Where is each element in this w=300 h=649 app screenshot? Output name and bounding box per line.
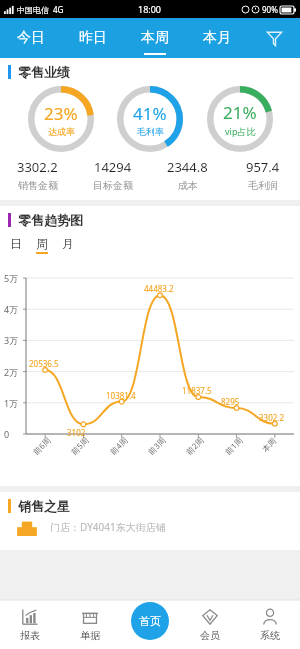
button[interactable]: 今日 [0,18,62,58]
staticText: 成本 [178,179,198,192]
staticText: 达成率 [48,126,75,137]
staticText: 2万 [4,366,19,378]
staticText: 21% [223,101,257,124]
staticText: 3102 [67,427,86,438]
staticText: 毛利润 [248,179,278,192]
staticText: 11837.5 [182,385,212,396]
staticText: 4万 [4,303,19,315]
staticText: 前3周 [145,434,168,457]
staticText: 44483.2 [144,283,174,294]
button[interactable]: 日 [10,236,22,254]
button[interactable]: 3302.2 [0,158,75,192]
button[interactable]: 本周 [124,18,186,58]
staticText: 23% [44,102,78,125]
staticText: 销售之星 [18,498,70,514]
button[interactable]: 14294 [75,158,150,192]
staticText: 14294 [94,158,132,176]
staticText: 前6周 [30,434,53,457]
staticText: 41% [133,102,167,125]
staticText: 前5周 [68,434,91,457]
staticText: 今日 [17,29,45,47]
button[interactable]: 23% [28,86,94,152]
button[interactable]: 周 [36,236,48,254]
staticText: 会员 [200,629,220,642]
staticText: 系统 [260,629,280,642]
button[interactable]: 系统 [240,600,300,649]
staticText: 10381.4 [106,390,136,401]
staticText: 3302.2 [259,412,285,423]
staticText: 报表 [20,629,40,642]
staticText: 4G [53,4,64,15]
staticText: 5万 [4,272,19,284]
staticText: 1万 [4,397,19,409]
staticText: 本月 [203,29,231,47]
button[interactable]: 首页 [120,600,180,649]
staticText: 零售业绩 [18,64,70,80]
staticText: 90% [262,4,278,15]
staticText: 首页 [139,614,161,628]
button[interactable]: 门店：DY4041东大街店铺 [14,520,300,550]
button[interactable]: 会员 [180,600,240,649]
staticText: 3万 [4,334,19,346]
staticText: 本周 [260,436,278,454]
staticText: 前1周 [222,434,245,457]
staticText: 8295 [221,396,240,407]
staticText: 周 [36,236,48,251]
staticText: 3302.2 [17,158,58,176]
button[interactable]: 报表 [0,600,60,649]
staticText: 前4周 [107,434,130,457]
staticText: 门店：DY4041东大街店铺 [50,520,166,534]
staticText: 昨日 [79,29,107,47]
staticText: 月 [62,236,74,251]
button[interactable]: 月 [62,236,74,254]
button[interactable]: 21% [207,86,273,152]
staticText: 20536.5 [29,358,59,369]
button[interactable]: 昨日 [62,18,124,58]
staticText: 中国电信 [17,5,49,15]
staticText: 本周 [141,29,169,47]
staticText: 毛利率 [137,126,164,137]
button[interactable]: 41% [117,86,183,152]
button[interactable]: Filter [248,18,300,58]
button[interactable]: 本月 [186,18,248,58]
staticText: 零售趋势图 [18,212,83,228]
staticText: vip占比 [225,125,256,137]
staticText: 前2周 [183,434,206,457]
staticText: 18:00 [138,3,162,15]
button[interactable]: 2344.8 [150,158,225,192]
staticText: 957.4 [246,158,280,176]
staticText: 单据 [80,629,100,642]
button[interactable]: 957.4 [225,158,300,192]
staticText: 0 [4,428,10,440]
staticText: 目标金额 [93,179,133,192]
button[interactable]: 单据 [60,600,120,649]
staticText: 销售金额 [18,179,58,192]
staticText: 2344.8 [167,158,208,176]
staticText: 日 [10,236,22,251]
